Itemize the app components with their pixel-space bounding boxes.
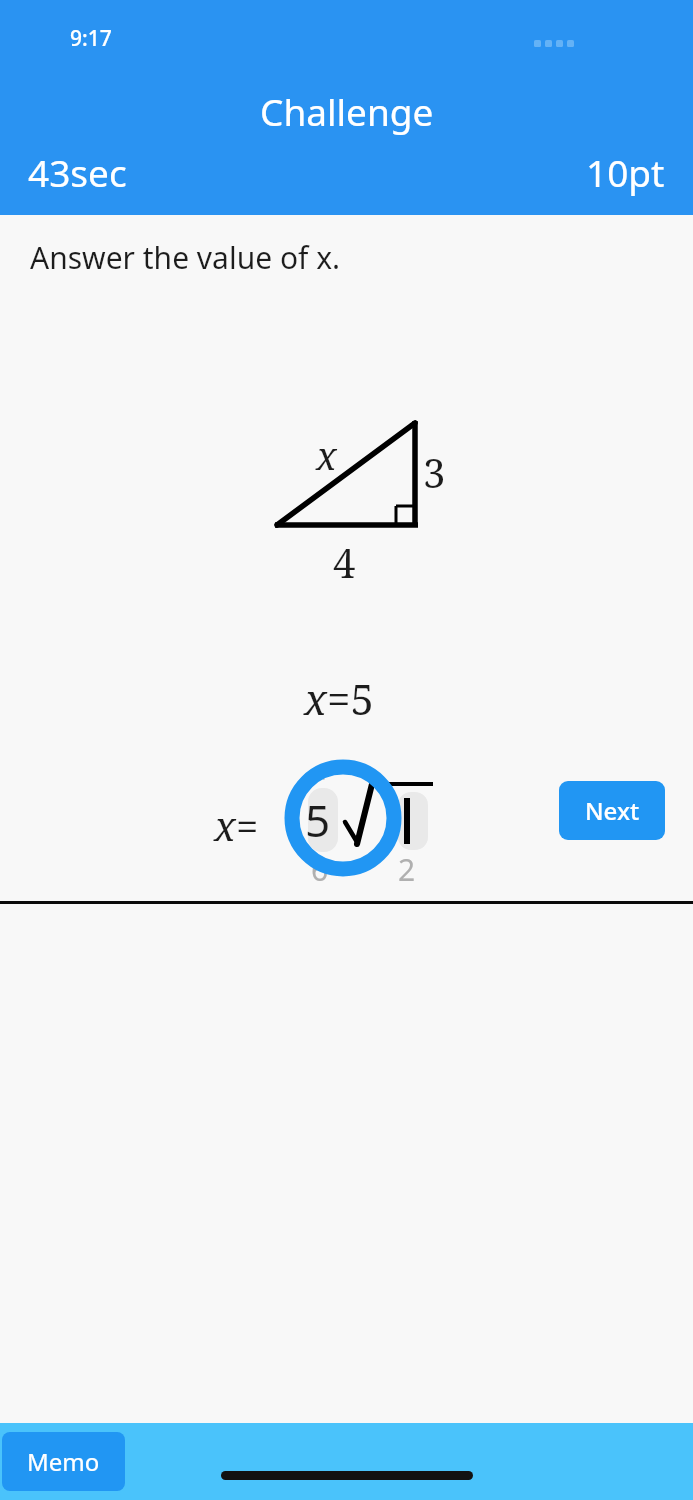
- staticText: x: [316, 429, 337, 481]
- staticText: 43sec: [28, 147, 127, 197]
- staticText: x: [304, 670, 327, 727]
- button[interactable]: Coefficient input: [308, 788, 338, 852]
- staticText: Next: [585, 794, 640, 827]
- staticText: 6: [311, 849, 329, 890]
- staticText: 3: [423, 445, 446, 499]
- staticText: +: [318, 761, 330, 788]
- staticText: 10pt: [586, 147, 665, 197]
- staticText: 2: [398, 849, 416, 890]
- button[interactable]: Radicand input: [398, 792, 428, 850]
- staticText: Answer the value of x.: [30, 237, 341, 278]
- staticText: 4: [333, 535, 356, 589]
- button[interactable]: Next: [559, 781, 665, 840]
- button[interactable]: Memo: [2, 1432, 125, 1491]
- staticText: =: [236, 798, 259, 852]
- staticText: 9:17: [70, 24, 112, 53]
- staticText: Memo: [27, 1445, 100, 1478]
- staticText: Challenge: [260, 86, 434, 136]
- staticText: x: [214, 798, 236, 852]
- staticText: 5: [305, 790, 331, 850]
- staticText: =5: [327, 670, 374, 727]
